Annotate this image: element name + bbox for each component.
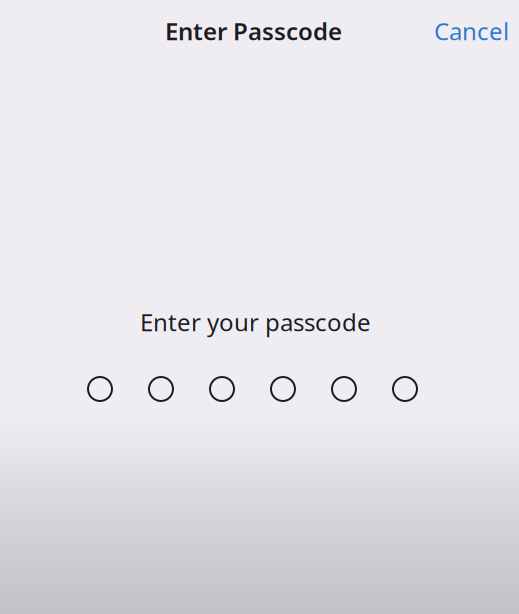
button[interactable]: Cancel [426,3,517,59]
staticText: Enter your passcode [140,306,371,338]
staticText: Cancel [434,15,509,47]
staticText: Enter Passcode [165,15,342,47]
